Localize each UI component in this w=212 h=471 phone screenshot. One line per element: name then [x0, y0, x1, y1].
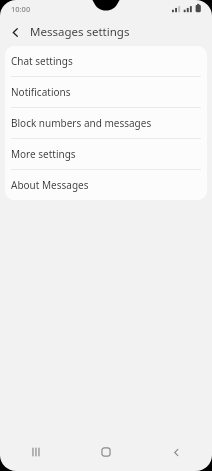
button[interactable]: Home: [70, 433, 141, 471]
button[interactable]: Notifications: [5, 77, 207, 107]
button[interactable]: Chat settings: [5, 46, 207, 76]
button[interactable]: Block numbers and messages: [5, 108, 207, 138]
staticText: Messages settings: [30, 24, 130, 40]
staticText: Notifications: [11, 85, 71, 99]
button[interactable]: Navigate up: [3, 20, 27, 44]
staticText: 10:00: [11, 4, 31, 14]
staticText: More settings: [11, 147, 76, 161]
button[interactable]: About Messages: [5, 170, 207, 200]
staticText: Chat settings: [11, 54, 73, 68]
button[interactable]: Back: [141, 433, 212, 471]
staticText: Block numbers and messages: [11, 116, 152, 130]
button[interactable]: Recent apps: [0, 433, 70, 471]
staticText: About Messages: [11, 178, 89, 192]
button[interactable]: More settings: [5, 139, 207, 169]
